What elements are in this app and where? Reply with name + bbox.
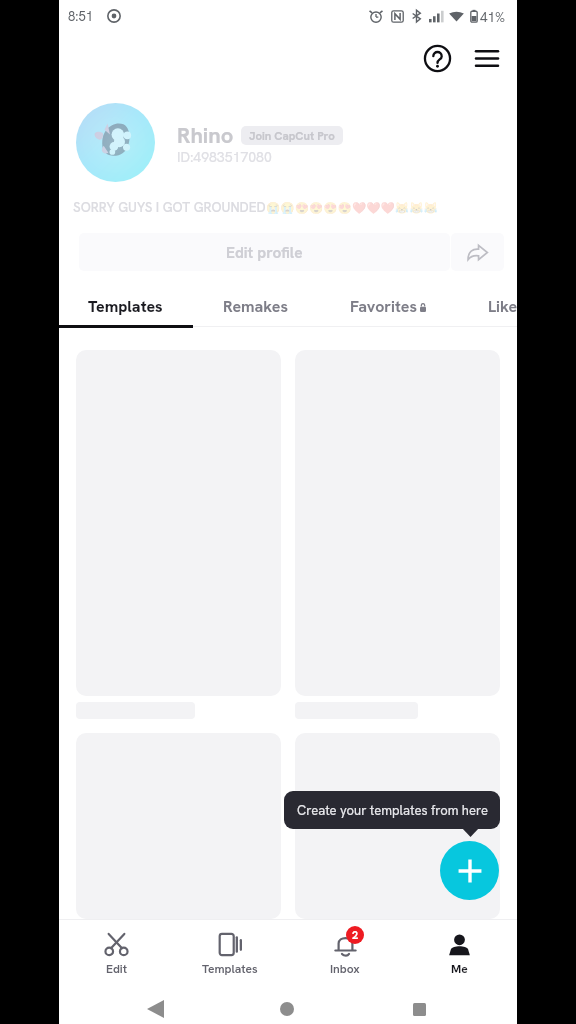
button[interactable]: 2	[287, 919, 402, 986]
button[interactable]: Favorites	[350, 286, 426, 326]
button[interactable]: Profile photo	[76, 103, 155, 182]
button[interactable]: Share	[451, 233, 504, 271]
staticText: Edit	[106, 961, 128, 977]
button[interactable]: Home	[280, 1002, 294, 1016]
staticText: Likes	[488, 296, 517, 317]
staticText: Templates	[202, 961, 258, 977]
staticText: 😭😭😍😍😍😍❤❤❤😹😹😹	[266, 201, 438, 214]
button[interactable]: Recents	[413, 1003, 426, 1016]
staticText: 41%	[480, 8, 506, 24]
staticText: Rhino	[177, 121, 234, 150]
button[interactable]	[295, 733, 500, 919]
staticText: Templates	[88, 296, 163, 317]
staticText: Create your templates from here	[297, 802, 488, 819]
staticText: 2	[352, 928, 359, 942]
button[interactable]: Help	[416, 37, 458, 79]
button[interactable]: Remakes	[223, 286, 289, 326]
staticText: Remakes	[223, 296, 289, 317]
staticText: SORRY GUYS I GOT GROUNDED	[73, 198, 266, 216]
button[interactable]: Templates	[173, 919, 287, 986]
staticText: Edit profile	[226, 242, 303, 262]
button[interactable]: Templates	[88, 286, 163, 326]
staticText: Join CapCut Pro	[249, 128, 335, 143]
button[interactable]: Back	[147, 1000, 164, 1018]
button[interactable]: Join CapCut Pro	[241, 126, 343, 145]
staticText: Favorites	[350, 296, 417, 317]
staticText: Me	[451, 961, 468, 977]
staticText: ID:4983517080	[177, 148, 272, 166]
button[interactable]: Menu	[466, 37, 508, 79]
button[interactable]: Likes	[488, 286, 517, 326]
staticText: Inbox	[330, 961, 360, 977]
button[interactable]: Edit profile	[79, 233, 450, 271]
button[interactable]: Create new project	[440, 841, 499, 900]
button[interactable]: Me	[402, 919, 517, 986]
staticText: 8:51	[68, 8, 93, 25]
button[interactable]: Edit	[59, 919, 173, 986]
